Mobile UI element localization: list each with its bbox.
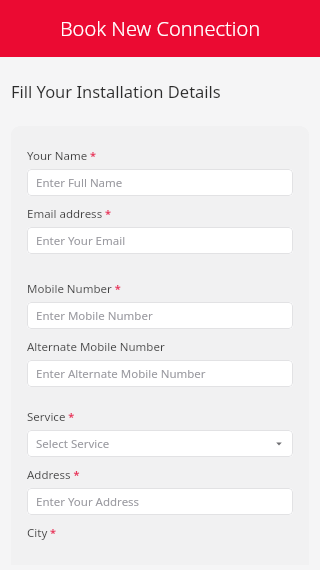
staticText: Service * <box>27 409 75 425</box>
button[interactable]: Enter Mobile Number <box>27 302 293 329</box>
button[interactable]: Select Service <box>27 430 293 457</box>
staticText: Mobile Number * <box>27 281 121 297</box>
button[interactable]: Enter Alternate Mobile Number <box>27 360 293 387</box>
button[interactable]: Enter Full Name <box>27 169 293 196</box>
staticText: Book New Connection <box>60 15 261 42</box>
staticText: Address * <box>27 467 80 483</box>
staticText: Enter Mobile Number <box>36 308 153 324</box>
staticText: Select Service <box>36 436 110 452</box>
button[interactable]: Enter Your Email <box>27 227 293 254</box>
staticText: Enter Your Address <box>36 494 140 510</box>
staticText: City * <box>27 525 57 541</box>
staticText: Enter Alternate Mobile Number <box>36 366 206 382</box>
staticText: Enter Full Name <box>36 175 123 191</box>
staticText: Your Name * <box>27 148 96 164</box>
staticText: Email address * <box>27 206 111 222</box>
staticText: Enter Your Email <box>36 233 126 249</box>
staticText: Alternate Mobile Number <box>27 339 165 355</box>
button[interactable]: Enter Your Address <box>27 488 293 515</box>
staticText: Fill Your Installation Details <box>11 80 221 102</box>
